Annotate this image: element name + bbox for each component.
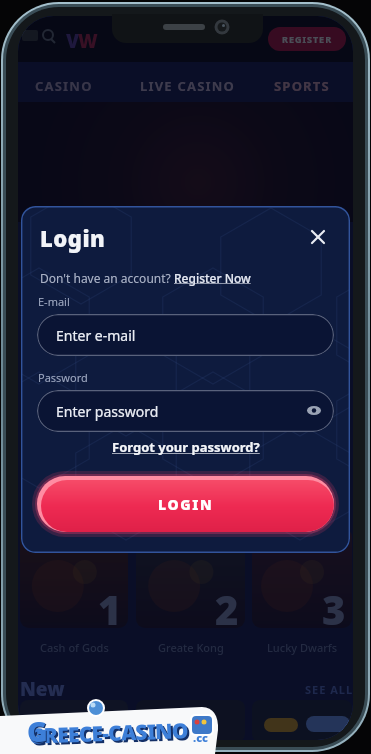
- staticText: GREECE-CASINO: [28, 716, 188, 751]
- staticText: G: [28, 713, 49, 751]
- staticText: W: [78, 28, 98, 54]
- staticText: 1: [98, 582, 122, 636]
- button[interactable]: CASINO: [35, 77, 93, 95]
- staticText: Lucky Dwarfs: [267, 640, 338, 655]
- staticText: New: [20, 676, 65, 702]
- button[interactable]: Enter e-mail: [37, 314, 334, 356]
- button[interactable]: [22, 30, 58, 44]
- staticText: REGISTER: [282, 33, 333, 45]
- button[interactable]: [305, 224, 331, 250]
- staticText: Don't have an account?: [40, 270, 174, 286]
- staticText: E-mail: [38, 294, 70, 309]
- button[interactable]: SPORTS: [274, 77, 330, 95]
- staticText: Enter password: [56, 402, 159, 421]
- button[interactable]: [20, 528, 128, 628]
- button[interactable]: Register Now: [174, 270, 251, 286]
- button[interactable]: REGISTER: [268, 27, 346, 51]
- staticText: Login: [40, 223, 106, 253]
- staticText: Forgot your password?: [112, 438, 260, 456]
- button[interactable]: SEE ALL: [305, 682, 353, 697]
- button[interactable]: [252, 528, 352, 628]
- button[interactable]: Forgot your password?: [21, 438, 350, 456]
- staticText: LOGIN: [158, 495, 214, 514]
- button[interactable]: LIVE CASINO: [140, 77, 236, 95]
- staticText: .cc: [193, 730, 209, 745]
- staticText: 2: [215, 582, 239, 636]
- staticText: Enter e-mail: [56, 326, 136, 345]
- staticText: Password: [38, 370, 88, 385]
- button[interactable]: [136, 528, 245, 628]
- button[interactable]: Enter password: [37, 390, 334, 432]
- staticText: 3: [322, 582, 346, 636]
- staticText: G: [27, 712, 48, 750]
- staticText: Greate Kong: [158, 640, 224, 655]
- staticText: V: [66, 28, 80, 54]
- staticText: GREECE-CASINO: [31, 718, 190, 753]
- button[interactable]: LOGIN: [37, 476, 334, 532]
- staticText: Cash of Gods: [40, 640, 109, 655]
